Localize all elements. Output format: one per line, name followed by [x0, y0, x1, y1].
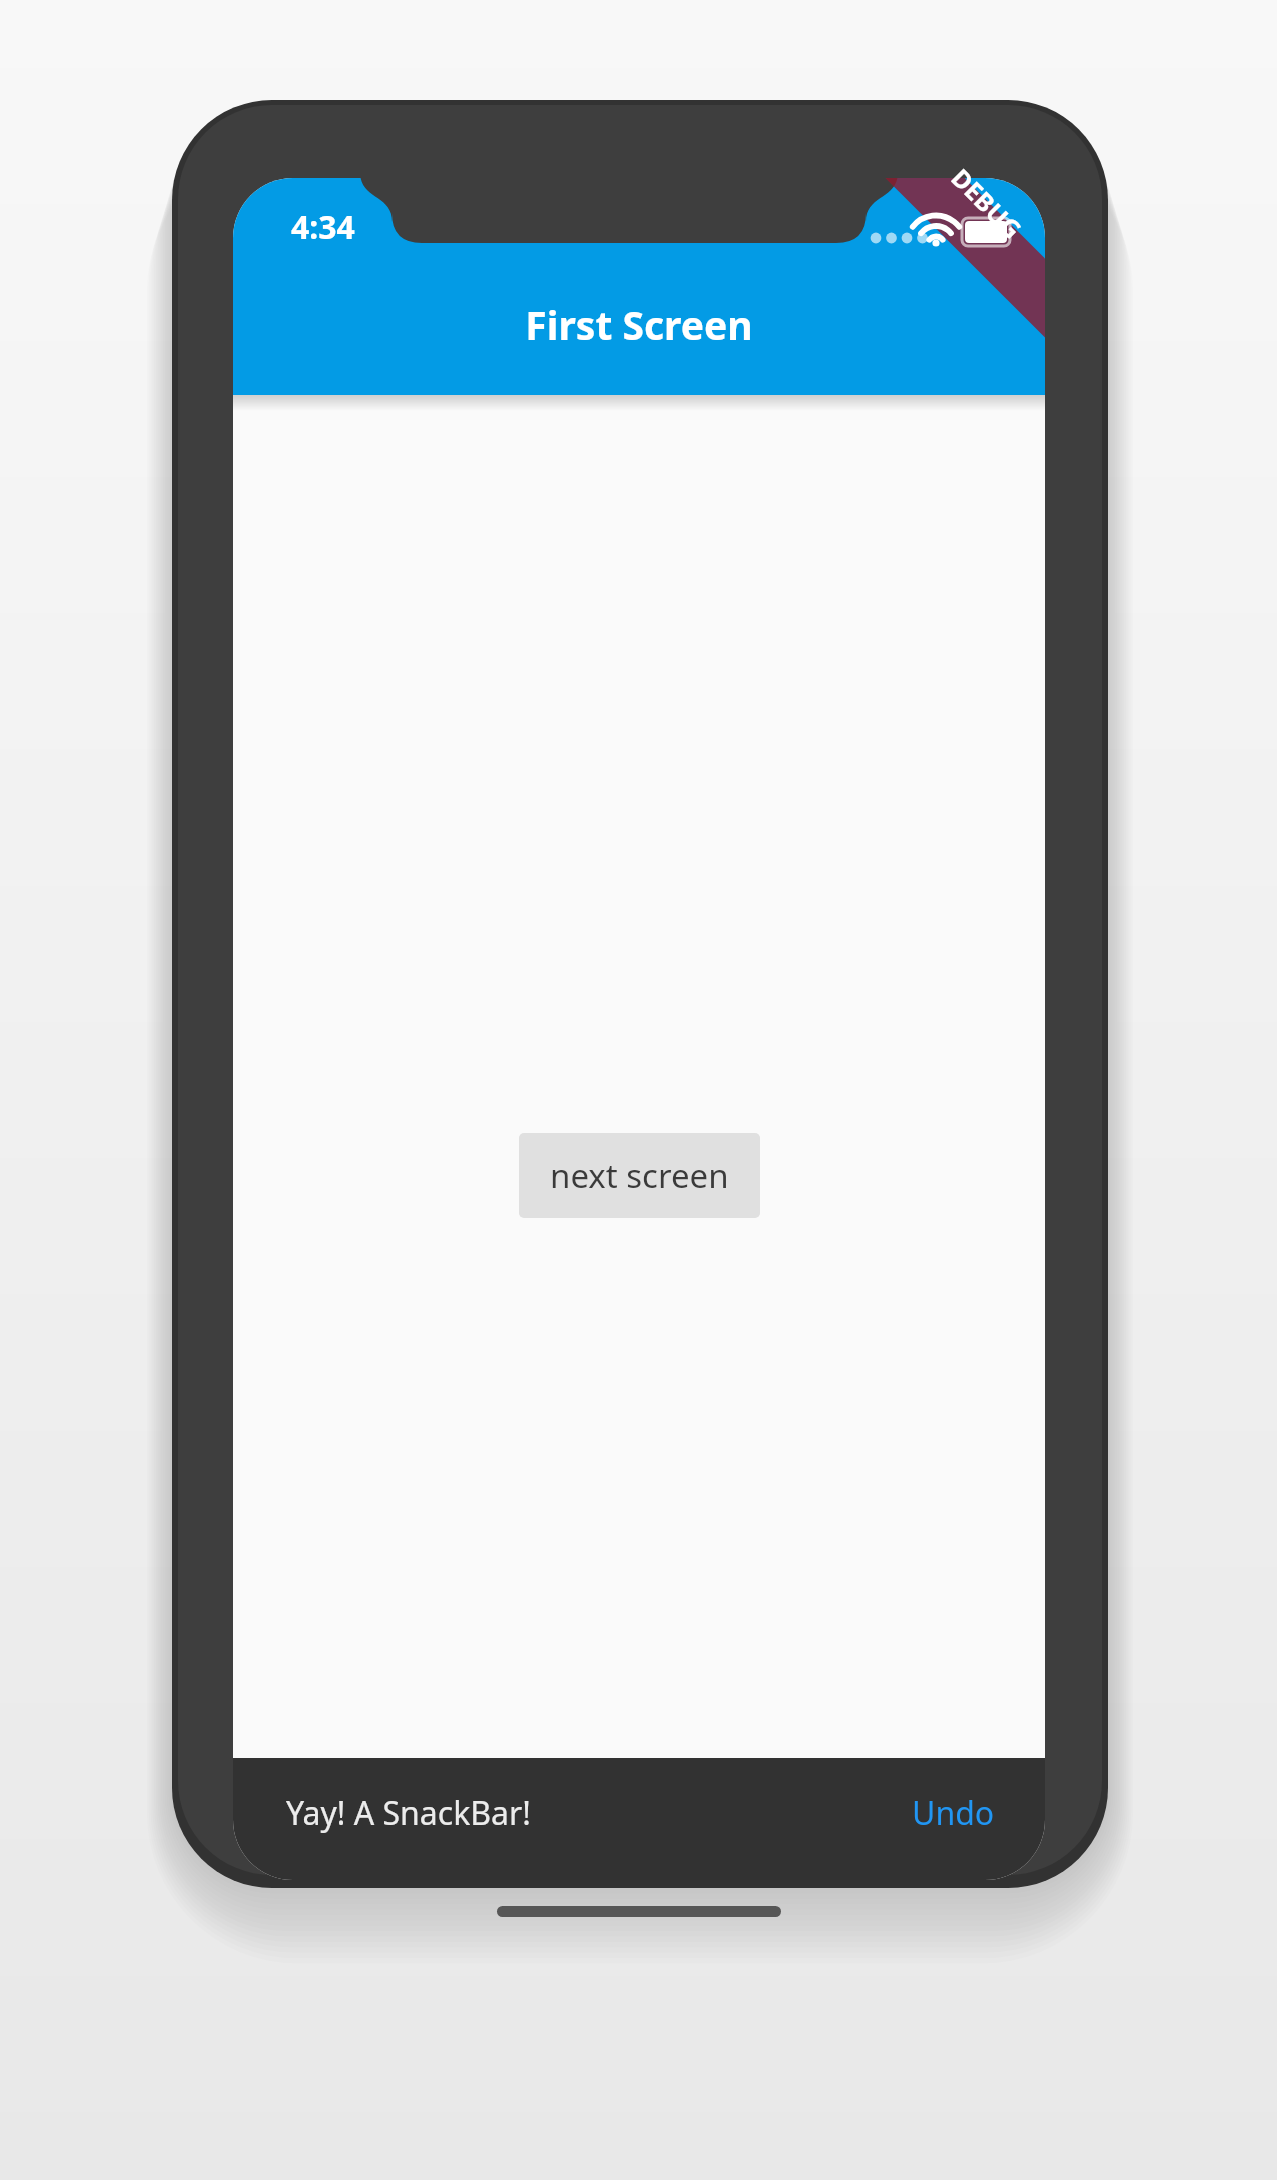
staticText: Yay! A SnackBar!	[286, 1791, 531, 1835]
staticText: First Screen	[525, 298, 753, 351]
staticText: next screen	[550, 1153, 729, 1198]
button[interactable]: Undo	[902, 1781, 1005, 1845]
staticText: Undo	[912, 1791, 995, 1835]
button[interactable]: next screen	[519, 1133, 760, 1218]
staticText: 4:34	[291, 205, 355, 249]
staticText: DEBUG	[945, 161, 1029, 245]
